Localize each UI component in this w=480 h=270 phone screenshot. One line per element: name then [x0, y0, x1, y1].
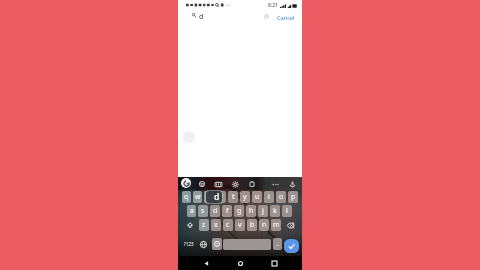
staticText: r — [220, 192, 223, 202]
staticText: z — [202, 220, 206, 230]
staticText: j — [262, 206, 264, 216]
button[interactable]: Switch language — [197, 238, 209, 250]
staticText: v — [238, 220, 242, 230]
staticText: g — [237, 206, 242, 216]
staticText: . — [277, 239, 279, 249]
staticText: q — [184, 192, 189, 202]
button[interactable]: q — [182, 191, 191, 203]
staticText: ?123 — [184, 241, 194, 247]
staticText: t — [232, 192, 235, 202]
button[interactable]: z — [199, 219, 209, 231]
button[interactable]: s — [198, 205, 208, 217]
button[interactable]: t — [228, 191, 238, 203]
button[interactable]: Recent apps — [268, 257, 280, 269]
button[interactable]: l — [282, 205, 292, 217]
button[interactable]: Backspace — [283, 220, 298, 230]
staticText: k — [273, 206, 277, 216]
button[interactable]: r — [216, 191, 226, 203]
staticText: w — [195, 192, 201, 202]
other: Search — [192, 13, 196, 17]
button[interactable]: w — [193, 191, 202, 203]
button[interactable]: k — [270, 205, 280, 217]
staticText: h — [249, 206, 254, 216]
button[interactable]: Stickers — [197, 179, 207, 189]
button[interactable]: . — [273, 238, 282, 250]
button[interactable]: b — [247, 219, 257, 231]
staticText: s — [201, 206, 205, 216]
button[interactable]: Cancel — [277, 12, 295, 23]
staticText: p — [291, 192, 296, 202]
staticText: a — [190, 206, 194, 216]
button[interactable]: i — [264, 191, 274, 203]
button[interactable]: d — [210, 205, 220, 217]
staticText: l — [286, 206, 288, 216]
button[interactable]: v — [235, 219, 245, 231]
button[interactable]: a — [187, 205, 196, 217]
button[interactable]: Enter — [284, 239, 299, 253]
button[interactable]: y — [240, 191, 250, 203]
staticText: c — [226, 220, 230, 230]
button[interactable]: Space — [223, 239, 271, 250]
staticText: y — [243, 192, 247, 202]
staticText: d — [199, 12, 204, 22]
button[interactable]: Emoji — [212, 238, 222, 250]
button[interactable]: Voice input — [287, 179, 297, 189]
button[interactable]: Shift — [182, 220, 197, 230]
staticText: u — [255, 192, 260, 202]
button[interactable]: o — [276, 191, 286, 203]
staticText: d — [214, 191, 220, 203]
button[interactable]: h — [246, 205, 256, 217]
button[interactable]: p — [288, 191, 298, 203]
button[interactable]: Clear query — [261, 11, 272, 22]
staticText: b — [250, 220, 255, 230]
button[interactable]: u — [252, 191, 262, 203]
button[interactable]: j — [258, 205, 268, 217]
button[interactable]: Search — [178, 9, 302, 23]
staticText: d — [213, 206, 218, 216]
button[interactable]: ?123 — [182, 238, 195, 250]
button[interactable]: GIF — [213, 179, 223, 189]
button[interactable]: Back — [200, 257, 212, 269]
button[interactable]: f — [222, 205, 232, 217]
button[interactable]: m — [271, 219, 281, 231]
button[interactable]: n — [259, 219, 269, 231]
staticText: m — [273, 220, 280, 230]
staticText: o — [279, 192, 284, 202]
button[interactable]: e — [204, 191, 214, 203]
button[interactable]: x — [211, 219, 221, 231]
button[interactable]: Settings — [230, 179, 240, 189]
button[interactable]: Clipboard — [247, 179, 257, 189]
staticText: f — [226, 206, 229, 216]
staticText: Cancel — [277, 14, 295, 22]
staticText: n — [262, 220, 267, 230]
staticText: 8:21 — [268, 2, 278, 9]
staticText: x — [214, 220, 218, 230]
button[interactable]: g — [234, 205, 244, 217]
button[interactable]: Home — [234, 257, 246, 269]
button[interactable]: c — [223, 219, 233, 231]
button[interactable]: More options — [270, 179, 280, 189]
button[interactable]: Google — [181, 178, 191, 188]
staticText: i — [268, 192, 270, 202]
